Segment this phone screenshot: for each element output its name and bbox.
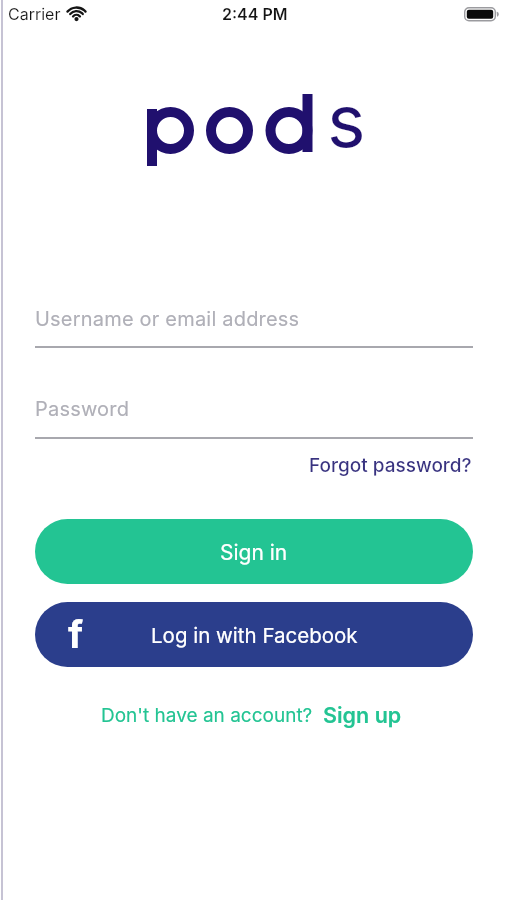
staticText: 2:44 PM	[222, 4, 288, 23]
staticText: Don't have an account?	[101, 704, 313, 727]
button[interactable]: Sign in	[35, 519, 473, 584]
staticText: f	[68, 611, 84, 657]
staticText: Username or email address	[35, 307, 300, 331]
staticText: Sign in	[220, 540, 288, 565]
staticText: Carrier	[8, 4, 61, 23]
staticText: s	[327, 76, 366, 164]
staticText: Log in with Facebook	[151, 623, 358, 648]
staticText: Password	[35, 397, 130, 421]
button[interactable]: Log in with Facebook	[35, 602, 473, 667]
button[interactable]: Sign up	[323, 702, 402, 728]
button[interactable]: Forgot password?	[309, 454, 472, 477]
